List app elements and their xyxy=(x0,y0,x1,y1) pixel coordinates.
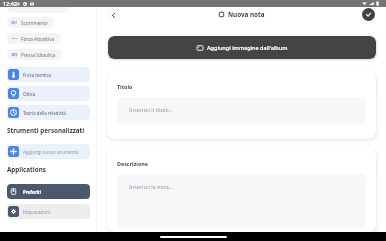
button[interactable]: Aggiungi immagine dall'album xyxy=(108,36,376,59)
staticText: Descrizione xyxy=(117,160,149,167)
button[interactable]: Teoria della relatività xyxy=(7,105,90,120)
staticText: Fisica termica xyxy=(23,72,52,78)
staticText: Forza Attrattiva xyxy=(21,36,55,42)
button[interactable]: Impostazioni xyxy=(7,204,90,219)
button[interactable]: Descrizione xyxy=(107,148,376,232)
button[interactable]: Fisica termica xyxy=(7,67,90,82)
staticText: Titolo xyxy=(117,83,133,90)
staticText: 12:42 xyxy=(3,0,17,7)
button[interactable]: Scorrimento xyxy=(7,17,54,28)
button[interactable]: Save note xyxy=(362,8,375,21)
staticText: Ottica xyxy=(23,91,36,97)
staticText: Impostazioni xyxy=(23,209,50,215)
staticText: Nuova nota xyxy=(228,10,265,19)
staticText: Aggiungi immagine dall'album xyxy=(207,44,288,51)
staticText: Scorrimento xyxy=(21,20,48,26)
button[interactable]: Pressa Idraulica xyxy=(7,49,62,60)
staticText: Aggiungi nuovo strumento xyxy=(23,149,79,155)
staticText: Strumenti personalizzati xyxy=(7,126,85,135)
staticText: Pressa Idraulica xyxy=(21,52,56,58)
staticText: Inserisci il titolo... xyxy=(129,106,174,113)
button[interactable]: Aggiungi nuovo strumento xyxy=(7,144,90,159)
staticText: Preferiti xyxy=(23,189,42,195)
staticText: Teoria della relatività xyxy=(23,110,66,116)
button[interactable]: Preferiti xyxy=(7,184,90,199)
button[interactable]: Ottica xyxy=(7,86,90,101)
button[interactable]: Titolo xyxy=(107,71,376,139)
staticText: Inserisci la nota... xyxy=(129,183,174,190)
button[interactable]: Back xyxy=(106,8,120,22)
staticText: Applications xyxy=(7,165,46,174)
button[interactable]: Forza Attrattiva xyxy=(7,33,61,44)
